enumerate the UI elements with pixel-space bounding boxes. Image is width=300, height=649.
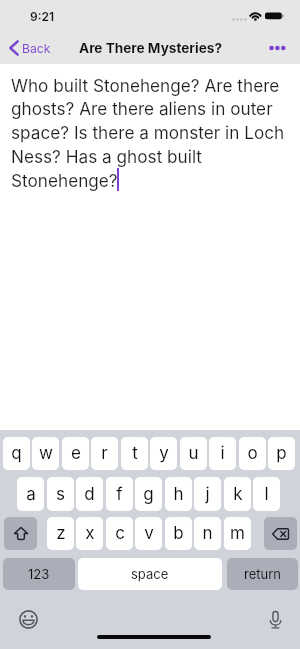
- button[interactable]: w: [32, 437, 59, 470]
- staticText: h: [173, 484, 184, 505]
- button[interactable]: i: [209, 437, 236, 470]
- button[interactable]: t: [121, 437, 148, 470]
- button[interactable]: z: [47, 517, 74, 550]
- staticText: f: [116, 484, 123, 505]
- staticText: c: [115, 523, 125, 544]
- staticText: Are There Mysteries?: [79, 40, 223, 56]
- button[interactable]: n: [194, 517, 221, 550]
- button[interactable]: d: [76, 477, 103, 511]
- staticText: s: [56, 484, 65, 505]
- staticText: p: [276, 443, 287, 464]
- button[interactable]: s: [47, 477, 74, 511]
- button[interactable]: o: [239, 437, 266, 470]
- button[interactable]: q: [3, 437, 30, 470]
- staticText: t: [132, 443, 138, 464]
- staticText: b: [173, 523, 184, 544]
- button[interactable]: h: [165, 477, 192, 511]
- staticText: d: [84, 484, 95, 505]
- button[interactable]: r: [91, 437, 118, 470]
- staticText: 123: [28, 566, 50, 582]
- staticText: return: [244, 566, 281, 582]
- staticText: v: [144, 523, 154, 544]
- button[interactable]: p: [268, 437, 295, 470]
- button[interactable]: c: [106, 517, 133, 550]
- staticText: x: [85, 523, 95, 544]
- button[interactable]: return: [227, 558, 298, 590]
- staticText: l: [264, 484, 269, 505]
- staticText: Who built Stonehenge? Are there ghosts? …: [11, 75, 291, 191]
- button[interactable]: v: [135, 517, 162, 550]
- button[interactable]: Shift: [4, 517, 37, 550]
- staticText: a: [26, 484, 36, 505]
- staticText: y: [159, 443, 169, 464]
- staticText: e: [71, 443, 81, 464]
- button[interactable]: x: [76, 517, 103, 550]
- staticText: q: [11, 443, 22, 464]
- staticText: g: [143, 484, 154, 505]
- staticText: u: [188, 443, 199, 464]
- button[interactable]: j: [194, 477, 221, 511]
- button[interactable]: More options: [262, 33, 295, 63]
- staticText: k: [233, 484, 243, 505]
- staticText: o: [247, 443, 258, 464]
- button[interactable]: f: [106, 477, 133, 511]
- button[interactable]: 123: [3, 558, 75, 590]
- staticText: n: [202, 523, 213, 544]
- button[interactable]: u: [180, 437, 207, 470]
- staticText: space: [131, 566, 169, 582]
- staticText: Back: [22, 41, 51, 56]
- button[interactable]: m: [224, 517, 251, 550]
- staticText: z: [56, 523, 66, 544]
- button[interactable]: e: [62, 437, 89, 470]
- staticText: m: [230, 523, 245, 544]
- button[interactable]: y: [150, 437, 177, 470]
- button[interactable]: Backspace: [264, 517, 297, 550]
- button[interactable]: Back: [0, 33, 61, 63]
- staticText: r: [101, 443, 108, 464]
- button[interactable]: space: [78, 558, 222, 590]
- staticText: w: [39, 443, 53, 464]
- button[interactable]: b: [165, 517, 192, 550]
- button[interactable]: a: [17, 477, 44, 511]
- button[interactable]: g: [135, 477, 162, 511]
- button[interactable]: Emoji keyboard: [17, 608, 40, 631]
- button[interactable]: l: [253, 477, 280, 511]
- staticText: j: [205, 484, 210, 505]
- button[interactable]: Dictate: [263, 608, 287, 632]
- staticText: 9:21: [30, 9, 55, 24]
- button[interactable]: k: [224, 477, 251, 511]
- staticText: i: [220, 443, 225, 464]
